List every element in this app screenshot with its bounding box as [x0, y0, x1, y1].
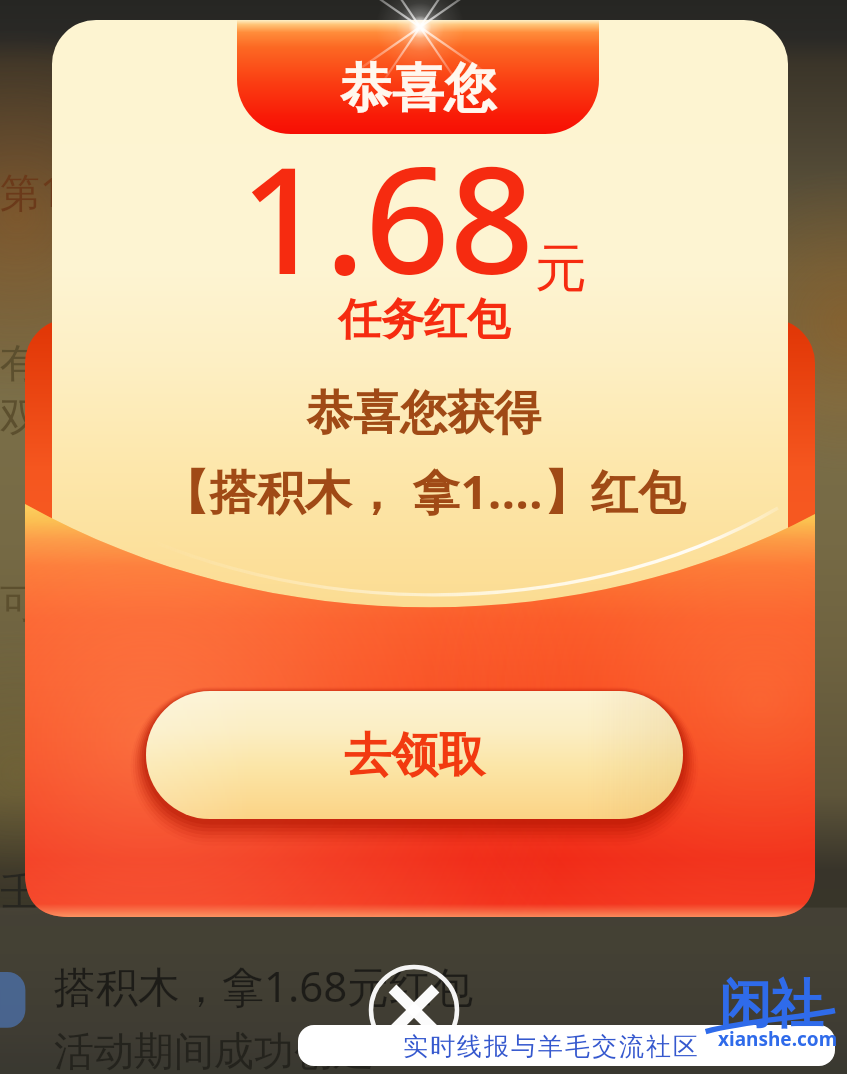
- staticText: 活动期间成功创建…: [54, 1022, 406, 1074]
- button[interactable]: Close: [368, 964, 460, 1056]
- staticText: 闲社: [719, 972, 823, 1038]
- button[interactable]: 去领取: [146, 691, 683, 819]
- staticText: 【搭积木， 拿1....】红包: [162, 459, 686, 523]
- staticText: 1.68: [240, 116, 535, 318]
- staticText: 实时线报与羊毛交流社区: [402, 1031, 699, 1062]
- staticText: 双: [0, 392, 40, 442]
- staticText: 元: [535, 236, 587, 302]
- staticText: 可: [0, 578, 40, 628]
- staticText: 恭喜您获得: [306, 384, 541, 443]
- staticText: xianshe.com: [718, 1026, 838, 1052]
- staticText: 第1天: [0, 164, 103, 219]
- button[interactable]: 实时线报与羊毛交流社区: [298, 1025, 835, 1066]
- staticText: 有1: [0, 334, 63, 389]
- staticText: 去领取: [344, 726, 485, 785]
- staticText: 搭积木，拿1.68元红包: [54, 957, 474, 1014]
- staticText: 任务红包: [338, 293, 510, 347]
- staticText: 恭喜您: [340, 56, 496, 122]
- staticText: 壬: [0, 866, 40, 916]
